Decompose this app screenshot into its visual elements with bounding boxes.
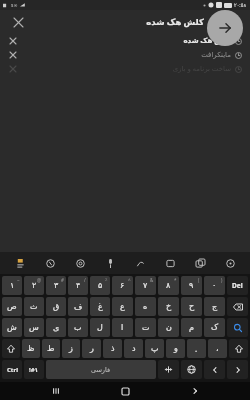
button[interactable]: Home xyxy=(111,382,139,400)
button[interactable]: & xyxy=(135,276,156,295)
button[interactable]: Remove xyxy=(0,62,250,76)
staticText: !#١ xyxy=(29,366,39,374)
button[interactable]: ت xyxy=(135,318,156,337)
staticText: * xyxy=(174,277,177,283)
button[interactable]: Remove xyxy=(0,10,250,34)
button[interactable]: س xyxy=(24,318,44,337)
button[interactable]: Previous xyxy=(204,360,225,379)
button[interactable]: ی xyxy=(46,318,66,337)
staticText: Del xyxy=(232,281,243,290)
button[interactable]: Ctrl xyxy=(2,360,22,379)
staticText: ر xyxy=(90,344,94,353)
button[interactable]: ح xyxy=(181,297,202,316)
button[interactable]: Change language xyxy=(181,360,202,379)
button[interactable]: Toolbar action 7 xyxy=(190,253,210,273)
button[interactable]: . xyxy=(187,339,206,358)
button[interactable]: Remove xyxy=(6,48,20,62)
button[interactable]: ف xyxy=(68,297,88,316)
staticText: ۳ xyxy=(54,281,59,290)
button[interactable]: و xyxy=(166,339,185,358)
button[interactable]: ن xyxy=(158,318,179,337)
staticText: کلش هک شده xyxy=(146,16,204,28)
staticText: فارسی xyxy=(91,366,111,374)
staticText: ۸ xyxy=(166,281,171,290)
button[interactable]: # xyxy=(46,276,66,295)
staticText: Ctrl xyxy=(7,366,18,374)
button[interactable]: / xyxy=(68,276,88,295)
button[interactable]: ز xyxy=(62,339,80,358)
button[interactable]: Remove xyxy=(6,10,30,34)
button[interactable]: Toolbar action 1 xyxy=(10,253,30,273)
button[interactable]: Shift xyxy=(229,339,248,358)
button[interactable]: م xyxy=(181,318,202,337)
staticText: و xyxy=(174,344,178,353)
staticText: & xyxy=(150,277,154,283)
button[interactable]: Remove xyxy=(0,34,250,48)
staticText: ۶ xyxy=(120,281,125,290)
button[interactable]: ( xyxy=(181,276,202,295)
button[interactable]: @ xyxy=(24,276,44,295)
staticText: ت xyxy=(142,323,150,332)
staticText: ق xyxy=(53,302,60,311)
button[interactable]: ث xyxy=(24,297,44,316)
button[interactable]: !#١ xyxy=(24,360,44,379)
button[interactable]: Next xyxy=(227,360,248,379)
staticText: ۲ xyxy=(32,281,37,290)
button[interactable]: ٪ xyxy=(90,276,110,295)
button[interactable]: فارسی xyxy=(46,360,156,379)
button[interactable]: Backspace xyxy=(227,297,248,316)
button[interactable]: Toolbar action 3 xyxy=(70,253,90,273)
button[interactable]: Toolbar action 8 xyxy=(220,253,240,273)
button[interactable]: Search xyxy=(207,10,243,46)
button[interactable]: ص xyxy=(2,297,22,316)
button[interactable]: Del xyxy=(227,276,248,295)
staticText: ظ xyxy=(27,344,35,353)
button[interactable]: Toolbar action 6 xyxy=(160,253,180,273)
button[interactable]: Recent apps xyxy=(42,382,70,400)
button[interactable]: ب xyxy=(68,318,88,337)
button[interactable]: ) xyxy=(204,276,225,295)
staticText: ۷ xyxy=(143,281,148,290)
button[interactable]: ع xyxy=(112,297,133,316)
staticText: ح xyxy=(189,302,195,311)
button[interactable]: ~ xyxy=(2,276,22,295)
button[interactable]: ش xyxy=(2,318,22,337)
button[interactable]: Toolbar action 4 xyxy=(100,253,120,273)
staticText: غ xyxy=(98,302,103,311)
staticText: @ xyxy=(37,277,42,283)
staticText: ۹ xyxy=(189,281,194,290)
button[interactable]: ، xyxy=(208,339,227,358)
button[interactable]: ج xyxy=(204,297,225,316)
button[interactable]: * xyxy=(158,276,179,295)
staticText: ۱ xyxy=(10,281,15,290)
staticText: ماینکرافت xyxy=(201,51,231,59)
button[interactable]: پ xyxy=(145,339,164,358)
button[interactable]: ^ xyxy=(112,276,133,295)
button[interactable]: Toolbar action 2 xyxy=(40,253,60,273)
staticText: ی xyxy=(53,323,60,332)
staticText: ز xyxy=(69,344,73,353)
button[interactable]: د xyxy=(124,339,143,358)
button[interactable]: ق xyxy=(46,297,66,316)
button[interactable]: غ xyxy=(90,297,110,316)
button[interactable]: Remove xyxy=(0,48,250,62)
button[interactable]: Search xyxy=(227,318,248,337)
button[interactable]: ر xyxy=(82,339,101,358)
button[interactable]: Remove xyxy=(6,62,20,76)
button[interactable]: Shift xyxy=(2,339,20,358)
button[interactable]: خ xyxy=(158,297,179,316)
button[interactable]: Toolbar action 5 xyxy=(130,253,150,273)
button[interactable]: Move cursor xyxy=(158,360,179,379)
button[interactable]: ظ xyxy=(22,339,40,358)
button[interactable]: ه xyxy=(135,297,156,316)
staticText: ع xyxy=(120,302,125,311)
button[interactable]: ل xyxy=(90,318,110,337)
button[interactable]: ط xyxy=(42,339,60,358)
button[interactable]: ا xyxy=(112,318,133,337)
button[interactable]: Back xyxy=(181,382,209,400)
button[interactable]: Remove xyxy=(6,34,20,48)
button[interactable]: ک xyxy=(204,318,225,337)
button[interactable]: ذ xyxy=(103,339,122,358)
staticText: م xyxy=(189,323,194,332)
staticText: ، xyxy=(216,344,219,353)
